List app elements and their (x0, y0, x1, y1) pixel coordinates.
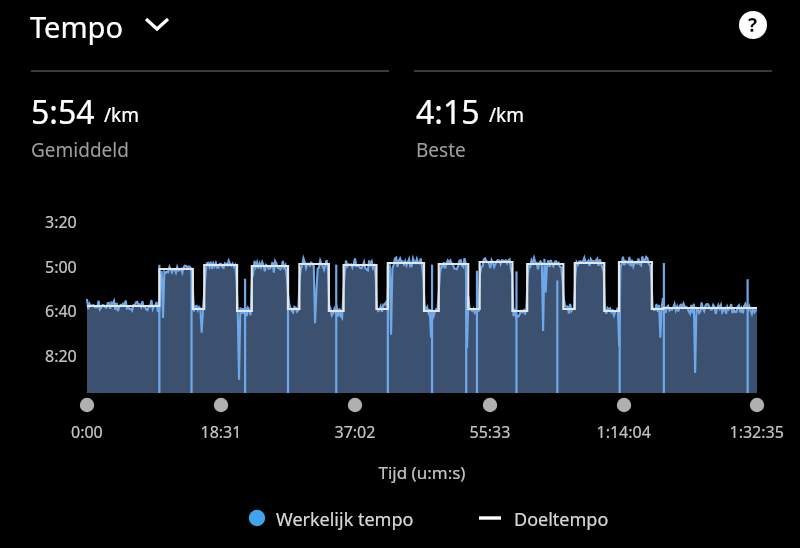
button[interactable]: Tempo, wijzig statistiek (24, 4, 176, 46)
button[interactable]: Help (729, 1, 777, 49)
